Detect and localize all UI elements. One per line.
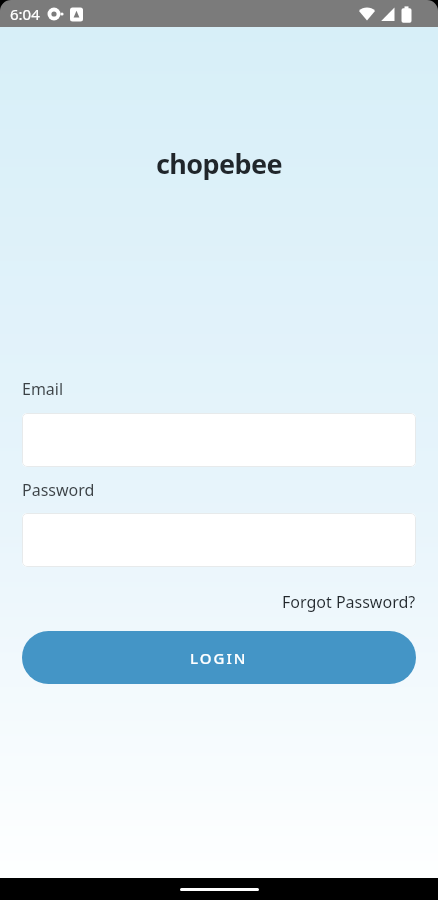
staticText: 6:04 bbox=[10, 4, 40, 24]
button[interactable]: Forgot Password? bbox=[282, 591, 416, 613]
button[interactable] bbox=[22, 513, 416, 567]
staticText: LOGIN bbox=[190, 648, 248, 668]
button[interactable]: LOGIN bbox=[22, 631, 416, 684]
staticText: chopebee bbox=[156, 145, 283, 182]
staticText: Email bbox=[22, 378, 64, 400]
staticText: Forgot Password? bbox=[282, 591, 416, 613]
staticText: Password bbox=[22, 479, 95, 501]
button[interactable] bbox=[22, 413, 416, 467]
